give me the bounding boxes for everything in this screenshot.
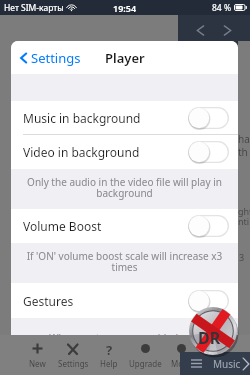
staticText: Player — [105, 49, 145, 67]
staticText: New — [29, 358, 46, 369]
button[interactable] — [188, 141, 229, 163]
staticText: nti — [238, 215, 250, 227]
staticText: Нет SIM-карты — [4, 2, 64, 14]
staticText: hat — [238, 132, 250, 146]
staticText: 3 — [239, 251, 245, 263]
staticText: ght — [238, 205, 250, 217]
button[interactable]: New — [19, 335, 55, 375]
button[interactable]: Settings — [17, 41, 84, 74]
staticText: More — [171, 358, 191, 369]
staticText: Settings — [58, 358, 89, 369]
button[interactable]: Gestures — [11, 283, 238, 318]
staticText: Video in background — [23, 144, 140, 160]
button[interactable] — [188, 290, 229, 312]
staticText: ? — [106, 341, 113, 356]
staticText: 84 % — [212, 2, 231, 14]
button[interactable]: Back — [196, 25, 205, 36]
staticText: Gestures — [23, 293, 74, 309]
staticText: Volume Boost — [23, 218, 102, 234]
button[interactable]: Video in background — [11, 135, 238, 169]
button[interactable]: More — [163, 335, 199, 375]
staticText: When gestures are enabled, you — [49, 331, 201, 335]
staticText: If 'ON' volume boost scale will increase… — [22, 249, 227, 274]
staticText: Upgrade — [129, 358, 162, 369]
button[interactable]: Forward — [223, 25, 232, 36]
button[interactable] — [188, 107, 229, 129]
staticText: 19:54 — [113, 2, 137, 14]
staticText: Help — [100, 358, 118, 369]
button[interactable]: Upgrade — [127, 335, 163, 375]
staticText: Music in background — [23, 110, 141, 126]
button[interactable]: Music in background — [11, 101, 238, 135]
button[interactable]: ? — [91, 335, 127, 375]
button[interactable] — [188, 215, 229, 237]
staticText: Only the audio in the video file will pl… — [22, 175, 227, 200]
staticText: th — [238, 145, 248, 159]
staticText: Settings — [31, 49, 81, 67]
button[interactable]: Menu — [191, 359, 202, 368]
staticText: Music — [213, 357, 241, 371]
staticText: DR — [198, 327, 221, 349]
button[interactable]: Volume Boost — [11, 209, 238, 243]
button[interactable]: Settings — [55, 335, 91, 375]
